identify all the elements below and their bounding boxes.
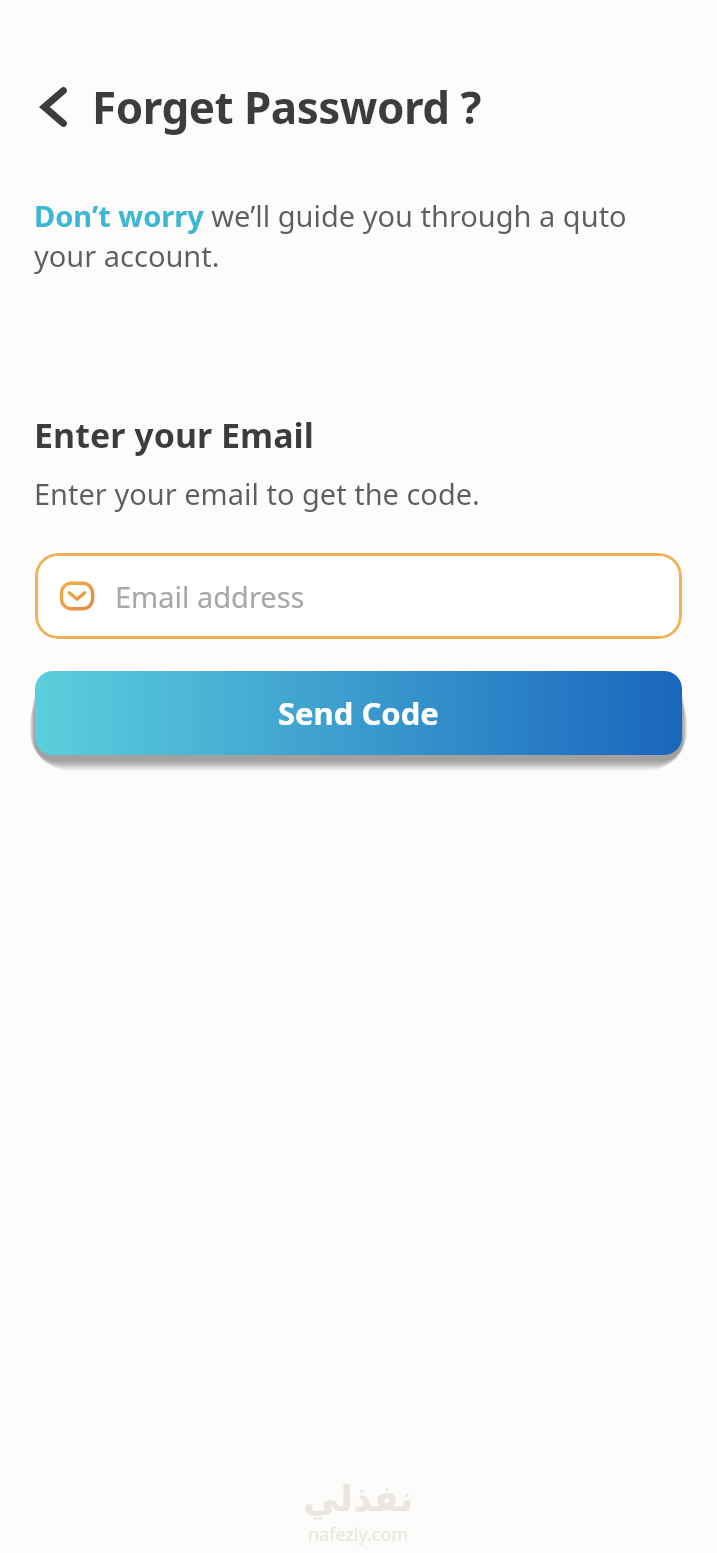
- staticText: Forget Password ?: [92, 77, 482, 137]
- staticText: Send Code: [278, 692, 439, 734]
- staticText: nafezly.com: [308, 1522, 409, 1547]
- button[interactable]: Send Code: [35, 671, 682, 755]
- staticText: Enter your Email: [34, 412, 314, 458]
- staticText: نفذلي: [303, 1478, 414, 1520]
- other: Email: [57, 576, 97, 616]
- staticText: Enter your email to get the code.: [34, 474, 480, 513]
- staticText: Don’t worry we’ll guide you through a qu…: [34, 196, 679, 276]
- button[interactable]: Email: [35, 553, 682, 639]
- staticText: Email address: [115, 577, 305, 616]
- button[interactable]: Back: [24, 76, 86, 138]
